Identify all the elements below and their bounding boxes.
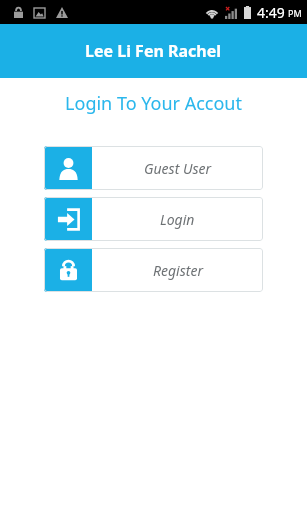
staticText: Login: [160, 210, 195, 229]
other: Register: [44, 248, 92, 292]
staticText: 4:49: [257, 3, 285, 22]
other: Login: [44, 197, 92, 241]
button[interactable]: Guest User: [44, 146, 263, 190]
staticText: PM: [288, 7, 302, 19]
staticText: Login To Your Accout: [0, 91, 307, 116]
button[interactable]: Login: [44, 197, 263, 241]
button[interactable]: Register: [44, 248, 263, 292]
staticText: Register: [153, 261, 203, 280]
staticText: Lee Li Fen Rachel: [85, 40, 222, 62]
other: Guest User: [44, 146, 92, 190]
staticText: Guest User: [144, 159, 212, 178]
